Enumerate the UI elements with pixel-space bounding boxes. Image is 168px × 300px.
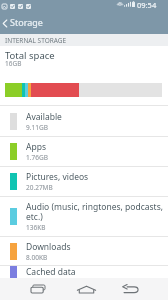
button[interactable]: Recent apps bbox=[14, 278, 62, 300]
staticText: Downloads bbox=[26, 241, 71, 253]
button[interactable]: Cached data bbox=[0, 266, 168, 278]
button[interactable]: Pictures, videos bbox=[0, 167, 168, 197]
staticText: Storage bbox=[10, 16, 43, 28]
staticText: 20.27MB bbox=[26, 183, 53, 192]
button[interactable]: Apps bbox=[0, 137, 168, 167]
staticText: 8.00KB bbox=[26, 253, 48, 262]
staticText: INTERNAL STORAGE bbox=[5, 36, 67, 45]
staticText: Total space bbox=[5, 49, 55, 62]
staticText: 9.11GB bbox=[26, 123, 48, 132]
staticText: 16GB bbox=[5, 59, 22, 68]
button[interactable]: Downloads bbox=[0, 237, 168, 266]
staticText: Apps bbox=[26, 141, 46, 153]
staticText: 1.76GB bbox=[26, 153, 48, 162]
staticText: Available bbox=[26, 111, 62, 123]
staticText: Cached data bbox=[26, 266, 76, 278]
button[interactable]: Home bbox=[62, 278, 110, 300]
button[interactable]: Back bbox=[0, 17, 47, 29]
staticText: Audio (music, ringtones, podcasts, etc.) bbox=[26, 201, 163, 223]
button[interactable]: Available bbox=[0, 106, 168, 137]
button[interactable]: Audio (music, ringtones, podcasts, etc.) bbox=[0, 197, 168, 237]
staticText: 136KB bbox=[26, 223, 46, 232]
button[interactable]: Back bbox=[106, 278, 154, 300]
staticText: Pictures, videos bbox=[26, 171, 89, 183]
staticText: 09:54 bbox=[137, 0, 157, 10]
